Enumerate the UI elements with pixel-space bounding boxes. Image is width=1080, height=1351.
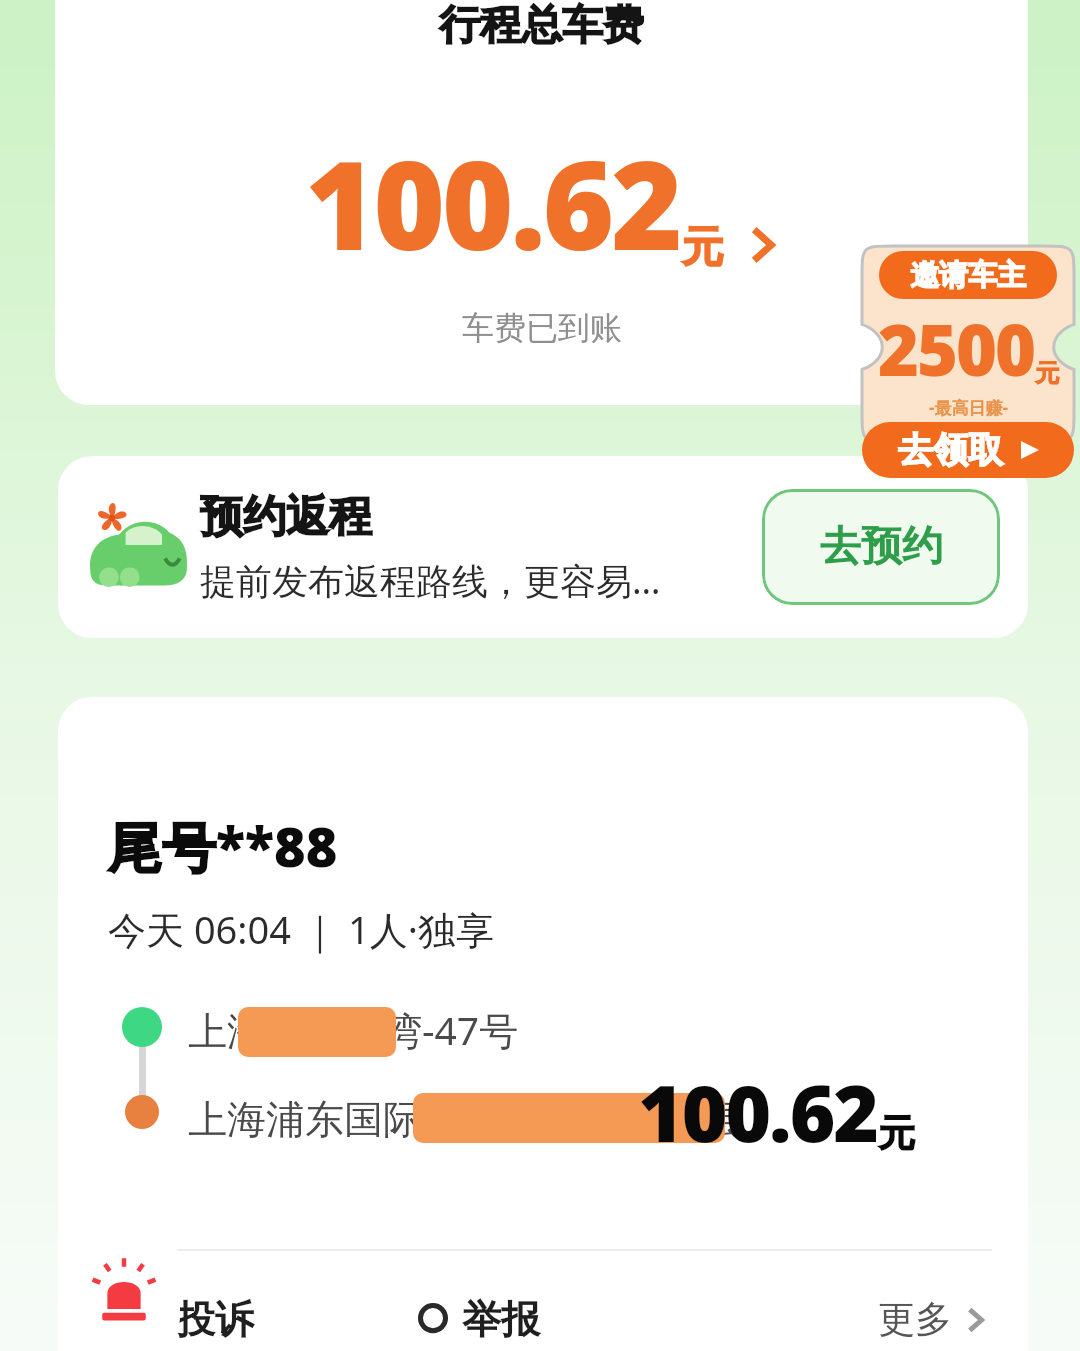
staticText: 车费已到账 bbox=[462, 308, 622, 348]
staticText: 2500 bbox=[878, 301, 1035, 396]
staticText: 元 bbox=[1035, 358, 1059, 388]
staticText: 100.62 bbox=[305, 120, 680, 286]
staticText: 上海浦东国际机场T2航站楼内层 bbox=[188, 1091, 739, 1144]
staticText: 尾号**88 bbox=[108, 809, 338, 883]
button[interactable]: 紧急求助 bbox=[68, 1232, 180, 1350]
staticText: 100.62 bbox=[638, 1059, 878, 1165]
staticText: 元 bbox=[878, 1110, 915, 1157]
staticText: 提前发布返程路线，更容易… bbox=[200, 556, 661, 605]
staticText: 更多 bbox=[878, 1296, 952, 1343]
staticText: -最高日赚- bbox=[929, 396, 1008, 419]
staticText: 投诉 bbox=[176, 1295, 254, 1344]
staticText: 元 bbox=[682, 221, 724, 274]
button[interactable]: 去预约 bbox=[762, 489, 1000, 605]
button[interactable]: 去领取 bbox=[862, 422, 1074, 478]
staticText: 举报 bbox=[462, 1295, 540, 1344]
button[interactable]: 邀请车主 bbox=[862, 246, 1074, 442]
button[interactable]: 投诉 bbox=[128, 1295, 414, 1344]
staticText: 预约返程 bbox=[200, 490, 372, 544]
staticText: 邀请车主 bbox=[910, 257, 1026, 294]
button[interactable]: 行程总车费 bbox=[55, 0, 1028, 405]
staticText: 行程总车费 bbox=[439, 0, 644, 52]
button[interactable]: 尾号**88 bbox=[58, 697, 1028, 1351]
button[interactable]: 更多 bbox=[878, 1296, 988, 1343]
button[interactable]: 举报 bbox=[414, 1295, 701, 1344]
staticText: 去领取 bbox=[898, 428, 1003, 472]
staticText: 今天 06:04 ｜ 1人·独享 bbox=[108, 903, 494, 955]
button[interactable]: 预约返程 bbox=[58, 456, 1028, 638]
staticText: 上海市徐汇湾-47号 bbox=[188, 1003, 519, 1056]
staticText: 去预约 bbox=[820, 521, 943, 573]
